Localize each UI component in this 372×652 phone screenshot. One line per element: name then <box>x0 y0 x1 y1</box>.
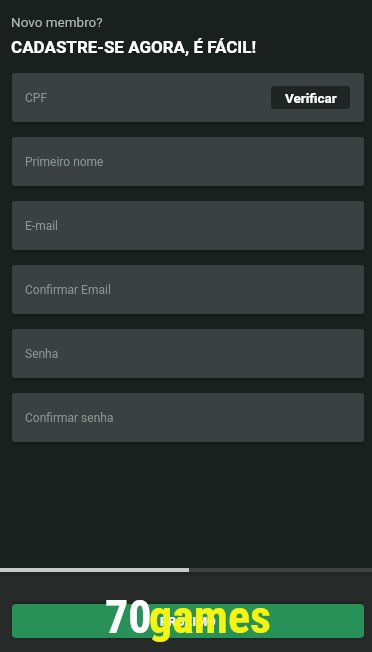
staticText: Verificar <box>285 90 337 106</box>
button[interactable]: PRÓXIMO <box>12 604 364 638</box>
staticText: Primeiro nome <box>25 155 104 169</box>
staticText: Novo membro? <box>11 14 103 30</box>
staticText: CPF <box>25 91 48 105</box>
staticText: E-mail <box>25 219 59 233</box>
staticText: 70 <box>105 590 152 644</box>
staticText: Confirmar senha <box>25 411 114 425</box>
staticText: games <box>149 590 271 644</box>
button[interactable]: Senha <box>12 329 364 378</box>
staticText: CADASTRE-SE AGORA, É FÁCIL! <box>11 37 257 57</box>
staticText: PRÓXIMO <box>160 614 216 629</box>
button[interactable]: Confirmar Email <box>12 265 364 314</box>
button[interactable]: Confirmar senha <box>12 393 364 442</box>
button[interactable]: E-mail <box>12 201 364 250</box>
staticText: Senha <box>25 347 59 361</box>
button[interactable]: CPF <box>12 73 364 122</box>
staticText: Confirmar Email <box>25 283 111 297</box>
button[interactable]: Verificar <box>271 86 350 109</box>
button[interactable]: Primeiro nome <box>12 137 364 186</box>
